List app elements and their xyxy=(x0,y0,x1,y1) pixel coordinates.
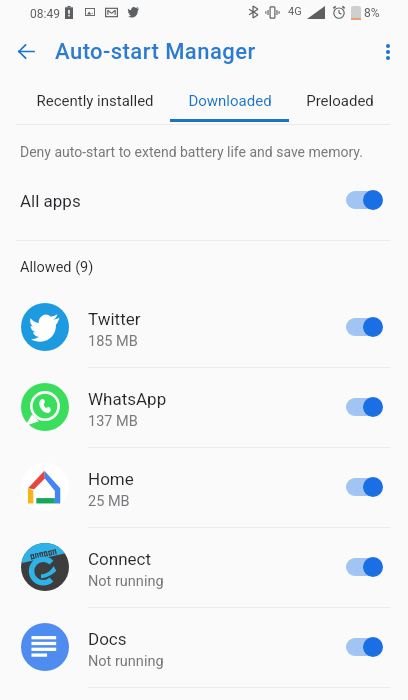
button[interactable]: WhatsApp xyxy=(0,367,408,447)
button[interactable]: Downloaded xyxy=(170,75,289,125)
staticText: Allowed (9) xyxy=(20,259,94,276)
staticText: 4G xyxy=(288,5,302,18)
staticText: Not running xyxy=(88,653,164,670)
staticText: 185 MB xyxy=(88,333,138,350)
staticText: Recently installed xyxy=(36,92,154,110)
staticText: Home xyxy=(88,469,134,489)
button[interactable]: Toggle auto-start xyxy=(345,476,384,498)
button[interactable]: Toggle auto-start xyxy=(345,189,384,211)
button[interactable]: Preloaded xyxy=(289,75,391,125)
staticText: Auto-start Manager xyxy=(55,39,256,65)
button[interactable]: All apps xyxy=(0,165,408,240)
staticText: 137 MB xyxy=(88,413,138,430)
button[interactable]: Back xyxy=(4,28,48,75)
button[interactable]: Connect xyxy=(0,527,408,607)
staticText: Downloaded xyxy=(188,92,272,110)
staticText: 08:49 xyxy=(30,7,60,21)
button[interactable]: Home xyxy=(0,447,408,527)
button[interactable]: Toggle auto-start xyxy=(345,396,384,418)
staticText: Deny auto-start to extend battery life a… xyxy=(20,144,363,160)
button[interactable]: Docs xyxy=(0,607,408,687)
staticText: 25 MB xyxy=(88,493,130,510)
staticText: Not running xyxy=(88,573,164,590)
staticText: All apps xyxy=(20,191,81,211)
staticText: Preloaded xyxy=(306,92,374,110)
button[interactable]: Toggle auto-start xyxy=(345,636,384,658)
button[interactable]: Recently installed xyxy=(20,75,170,125)
button[interactable]: Twitter xyxy=(0,287,408,367)
staticText: Connect xyxy=(88,549,152,569)
staticText: WhatsApp xyxy=(88,389,167,409)
staticText: Twitter xyxy=(88,309,141,329)
staticText: 8% xyxy=(364,6,380,20)
button[interactable]: More options xyxy=(368,28,408,75)
staticText: Docs xyxy=(88,629,127,649)
button[interactable]: Toggle auto-start xyxy=(345,316,384,338)
button[interactable]: Toggle auto-start xyxy=(345,556,384,578)
